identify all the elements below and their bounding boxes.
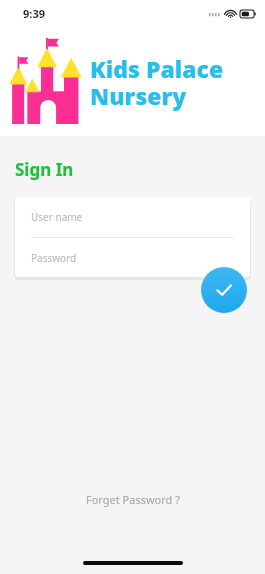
button[interactable]: User name <box>15 197 250 237</box>
staticText: Kids Palace <box>90 53 224 84</box>
staticText: Forget Password ? <box>86 492 180 507</box>
staticText: Password <box>31 251 77 265</box>
staticText: User name <box>31 210 83 224</box>
staticText: Sign In <box>15 158 74 181</box>
staticText: Nursery <box>90 80 187 111</box>
button[interactable]: Submit sign in <box>201 267 247 313</box>
button[interactable]: Forget Password ? <box>0 484 265 515</box>
staticText: 9:39 <box>23 6 45 21</box>
button[interactable]: Password <box>15 238 250 277</box>
